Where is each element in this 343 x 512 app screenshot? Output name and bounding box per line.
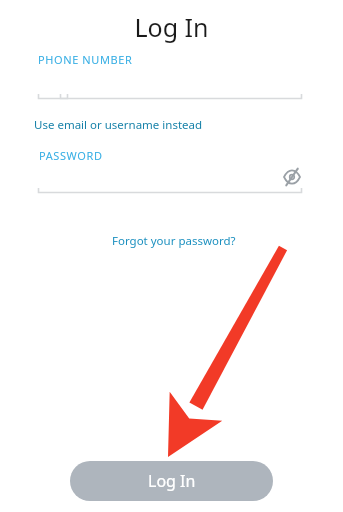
button[interactable]: Show password <box>279 164 305 190</box>
button[interactable]: Country code <box>38 74 68 100</box>
staticText: Forgot your password? <box>112 233 236 249</box>
staticText: Use email or username instead <box>34 117 203 133</box>
staticText: PASSWORD <box>39 148 103 163</box>
button[interactable]: Password <box>38 168 302 194</box>
staticText: PHONE NUMBER <box>38 52 133 67</box>
button[interactable]: Forgot your password? <box>110 232 238 250</box>
button[interactable]: Log In <box>70 461 273 501</box>
button[interactable]: Use email or username instead <box>32 116 205 134</box>
staticText: Log In <box>0 10 343 44</box>
button[interactable]: Phone number <box>60 74 302 100</box>
staticText: Log In <box>148 470 196 492</box>
